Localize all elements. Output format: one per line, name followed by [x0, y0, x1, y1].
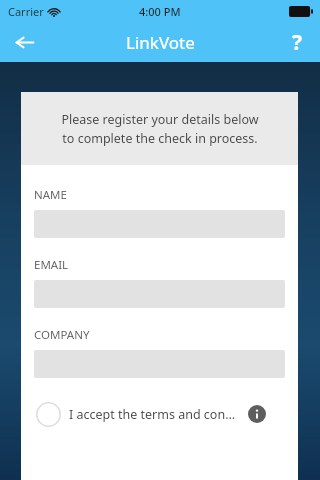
- staticText: EMAIL: [34, 257, 69, 273]
- staticText: NAME: [34, 187, 67, 203]
- staticText: ?: [292, 28, 303, 57]
- staticText: 4:00 PM: [139, 4, 181, 19]
- button[interactable]: Terms information: [244, 401, 270, 427]
- button[interactable]: Back: [0, 22, 48, 62]
- staticText: Carrier: [8, 4, 44, 19]
- button[interactable]: Help: [274, 22, 320, 62]
- button[interactable]: Accept terms checkbox: [34, 400, 62, 428]
- staticText: LinkVote: [126, 31, 195, 54]
- staticText: COMPANY: [34, 327, 90, 343]
- button[interactable]: I accept the terms and con…: [69, 406, 236, 423]
- staticText: Please register your details below to co…: [61, 111, 259, 147]
